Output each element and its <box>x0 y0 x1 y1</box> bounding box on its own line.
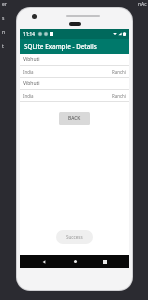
staticText: Success <box>66 234 83 240</box>
button[interactable]: Recents <box>98 255 112 268</box>
button[interactable]: Home <box>68 255 82 268</box>
button[interactable]: BACK <box>59 112 90 125</box>
staticText: Ranchi <box>112 69 126 75</box>
button[interactable]: India <box>20 90 129 101</box>
staticText: Vibhuti <box>23 80 40 87</box>
button[interactable]: Success <box>56 230 93 244</box>
button[interactable]: Vibhuti <box>20 54 129 65</box>
staticText: Vibhuti <box>23 56 40 63</box>
staticText: s <box>2 15 5 22</box>
staticText: SQLite Example - Details <box>24 42 97 51</box>
staticText: BACK <box>68 115 81 122</box>
staticText: nAc <box>138 1 147 8</box>
staticText: 11:14 <box>23 31 35 37</box>
button[interactable]: Back <box>37 255 51 268</box>
button[interactable]: Vibhuti <box>20 78 129 89</box>
staticText: India <box>23 69 34 75</box>
button[interactable]: SQLite Example - Details <box>20 39 129 54</box>
staticText: Ranchi <box>112 93 126 99</box>
button[interactable]: India <box>20 66 129 77</box>
staticText: n <box>2 29 6 36</box>
staticText: t <box>2 43 4 50</box>
staticText: er <box>2 1 7 8</box>
staticText: India <box>23 93 34 99</box>
